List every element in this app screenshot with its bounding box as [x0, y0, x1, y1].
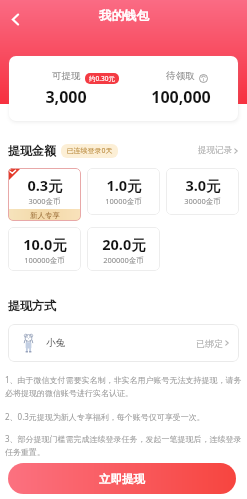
staticText: 3.0元	[185, 175, 221, 195]
button[interactable]: 20.0元	[87, 227, 160, 271]
button[interactable]: 3.0元	[166, 168, 239, 215]
staticText: 小兔	[46, 337, 65, 349]
staticText: 3000金币	[28, 196, 61, 206]
button[interactable]: 10.0元	[8, 227, 81, 271]
button[interactable]: 提现记录	[198, 143, 239, 158]
staticText: 约0.30元	[89, 74, 115, 83]
staticText: 10.0元	[23, 234, 67, 254]
staticText: 我的钱包	[99, 8, 149, 24]
staticText: 提现金额	[8, 143, 56, 158]
staticText: 提现记录	[198, 145, 232, 156]
staticText: 已绑定	[196, 338, 223, 349]
button[interactable]: 待领取	[123, 56, 238, 121]
button[interactable]: 立即提现	[8, 463, 236, 494]
staticText: 新人专享	[30, 211, 60, 220]
button[interactable]: 可提现	[9, 56, 123, 121]
staticText: 20.0元	[102, 234, 146, 254]
staticText: 3、部分提现门槛需完成连续登录任务，发起一笔提现后，连续登录任务重置。	[5, 433, 243, 458]
button[interactable]: 1.0元	[87, 168, 160, 215]
staticText: 1、由于微信支付需要实名制，非实名用户账号无法支持提现，请务必将提现的微信账号进…	[5, 374, 243, 399]
button[interactable]: 小兔	[8, 324, 239, 362]
staticText: 10000金币	[105, 196, 142, 206]
button[interactable]: Back	[2, 6, 28, 32]
staticText: 30000金币	[184, 196, 221, 206]
staticText: 0.3元	[27, 175, 63, 195]
staticText: 100000金币	[24, 255, 65, 265]
staticText: 提现方式	[8, 298, 56, 313]
staticText: 可提现	[52, 70, 81, 82]
button[interactable]: 0.3元	[8, 168, 81, 221]
staticText: 待领取	[166, 70, 195, 82]
staticText: 200000金币	[103, 255, 144, 265]
staticText: 2、0.3元提现为新人专享福利，每个账号仅可享受一次。	[5, 411, 205, 422]
staticText: 1.0元	[106, 175, 142, 195]
staticText: 3,000	[45, 86, 87, 108]
staticText: 100,000	[151, 86, 211, 108]
staticText: 已连续登录0天	[66, 146, 113, 156]
staticText: 立即提现	[99, 472, 145, 486]
